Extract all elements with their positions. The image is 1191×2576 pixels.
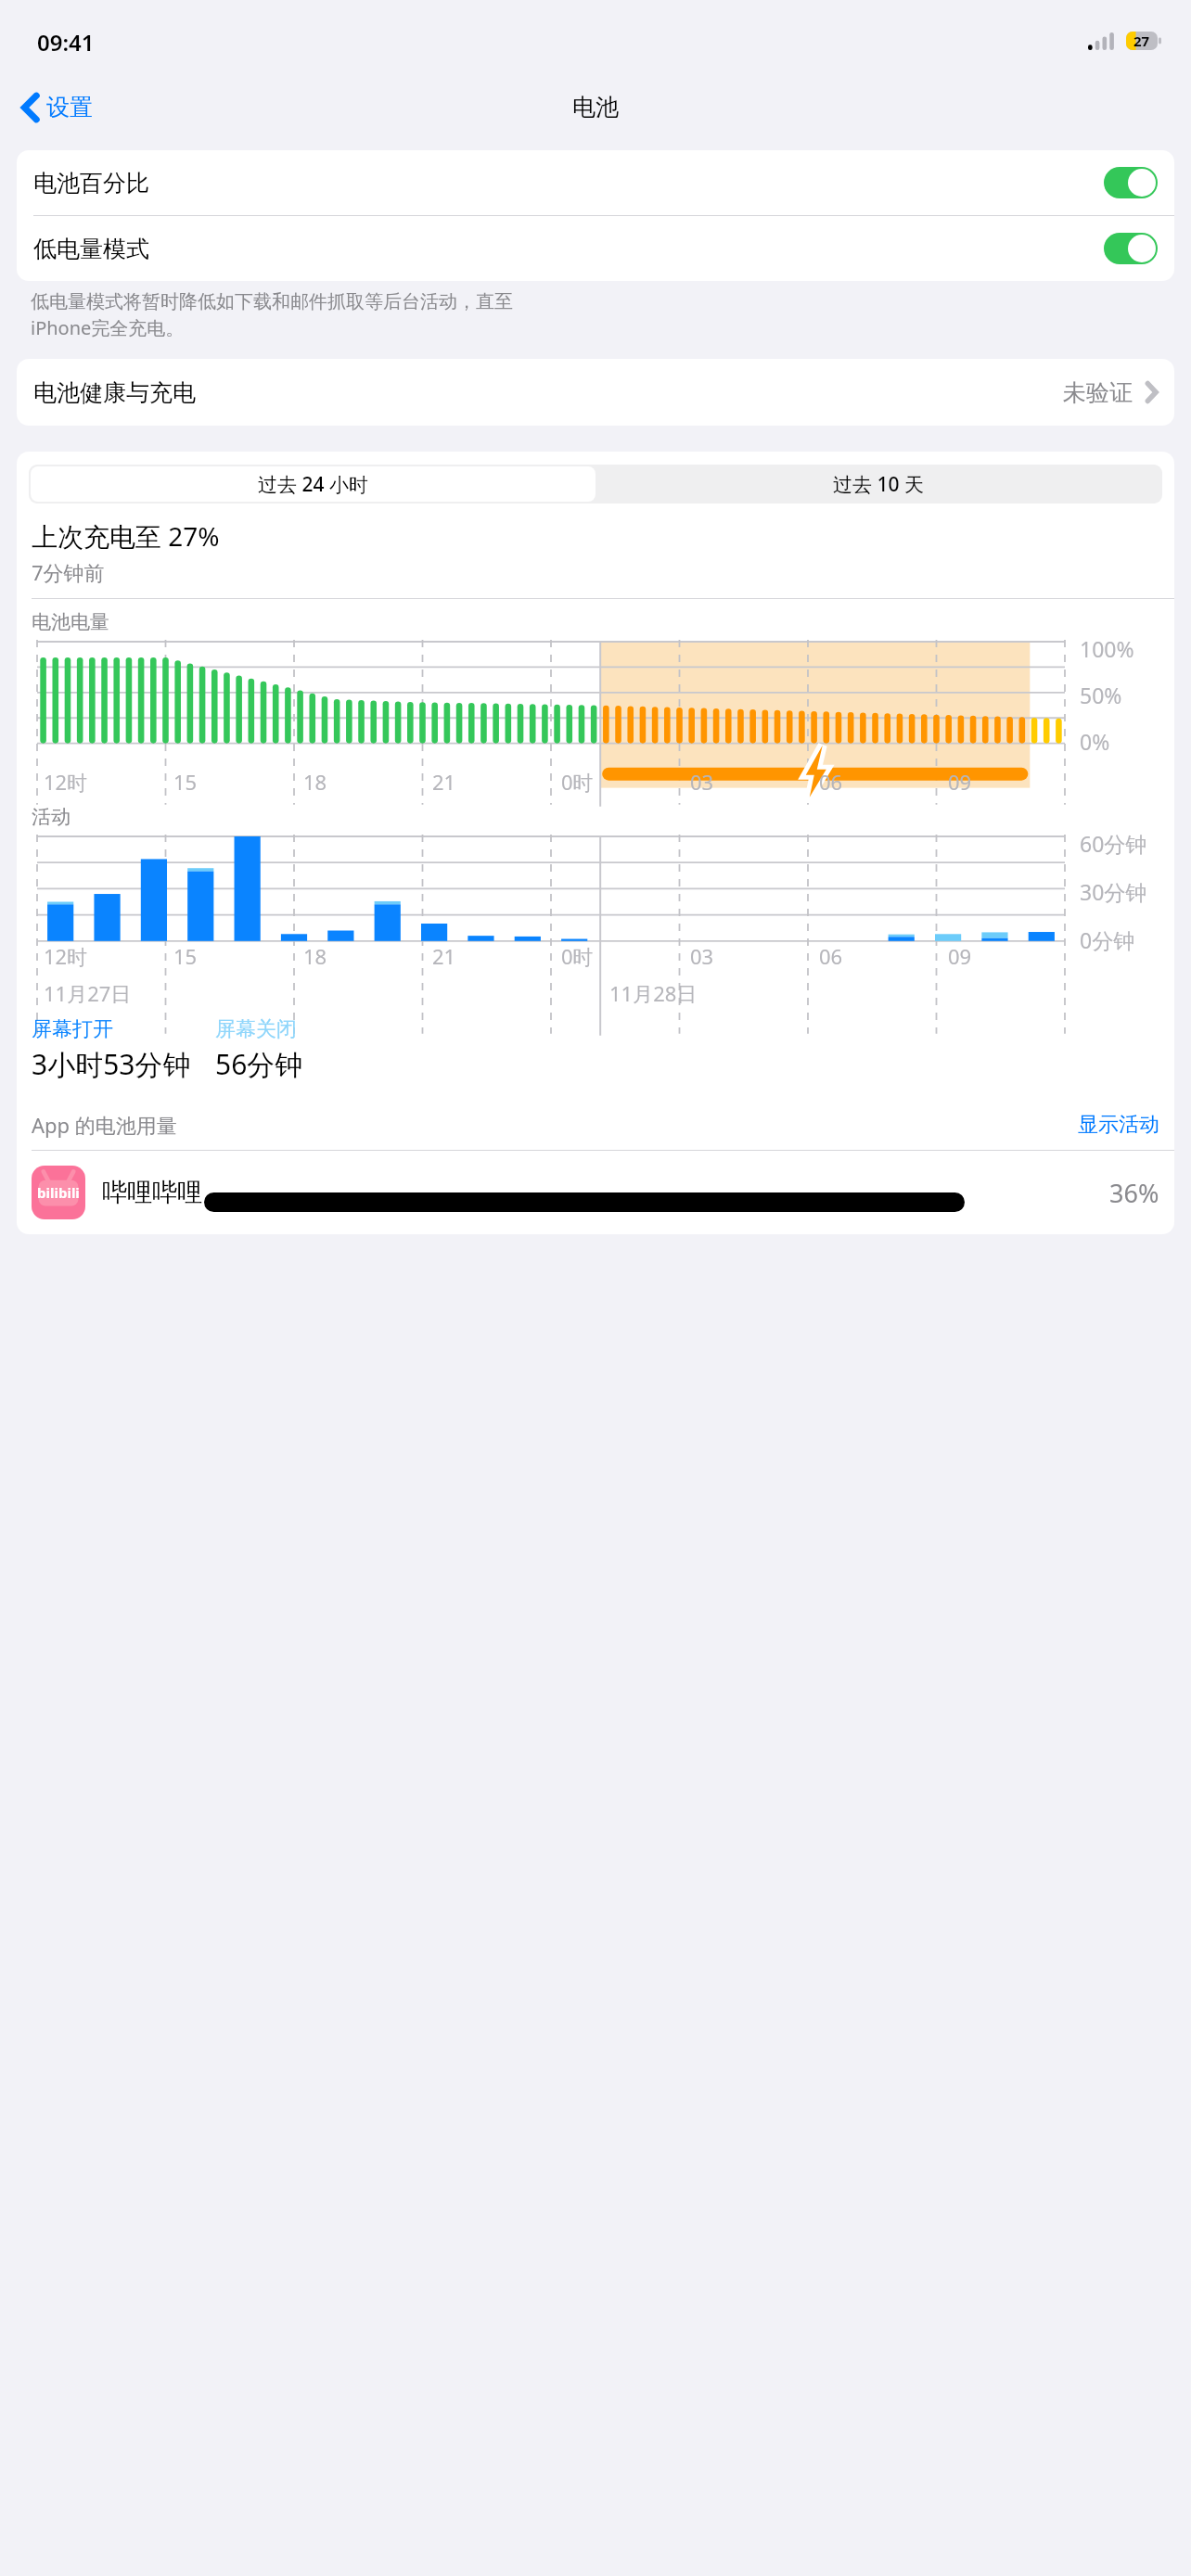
staticText: 09 bbox=[948, 768, 972, 796]
staticText: 30分钟 bbox=[1080, 877, 1147, 906]
staticText: 0时 bbox=[561, 768, 594, 796]
staticText: 15 bbox=[173, 942, 198, 970]
staticText: 03 bbox=[690, 942, 714, 970]
button[interactable]: bilibili bbox=[17, 1151, 1174, 1234]
staticText: App 的电池用量 bbox=[32, 1111, 177, 1139]
staticText: 06 bbox=[819, 942, 843, 970]
staticText: 0% bbox=[1080, 727, 1110, 756]
staticText: 低电量模式 bbox=[33, 235, 149, 263]
staticText: 15 bbox=[173, 768, 198, 796]
staticText: 哔哩哔哩 bbox=[102, 1177, 202, 1208]
staticText: 过去 10 天 bbox=[833, 471, 924, 498]
other: 电池百分比 bbox=[1104, 167, 1158, 198]
staticText: 03 bbox=[690, 768, 714, 796]
staticText: 27 bbox=[1133, 32, 1150, 50]
staticText: 上次充电至 27% bbox=[32, 518, 220, 554]
staticText: 12时 bbox=[44, 768, 88, 796]
staticText: 屏幕打开 bbox=[32, 1016, 113, 1042]
staticText: 100% bbox=[1080, 634, 1134, 663]
other: 低电量模式 bbox=[1104, 233, 1158, 264]
staticText: 09 bbox=[948, 942, 972, 970]
staticText: 36% bbox=[1109, 1176, 1159, 1210]
staticText: 06 bbox=[819, 768, 843, 796]
staticText: 电池百分比 bbox=[33, 169, 149, 198]
staticText: 低电量模式将暂时降低如下载和邮件抓取等后台活动，直至 iPhone完全充电。 bbox=[31, 290, 513, 340]
staticText: 60分钟 bbox=[1080, 829, 1147, 858]
staticText: 50% bbox=[1080, 681, 1122, 709]
staticText: 设置 bbox=[46, 93, 93, 121]
staticText: 活动 bbox=[32, 805, 70, 829]
staticText: 3小时53分钟 bbox=[32, 1045, 191, 1083]
staticText: 18 bbox=[303, 768, 327, 796]
button[interactable]: 过去 10 天 bbox=[595, 466, 1160, 502]
staticText: bilibili bbox=[37, 1183, 80, 1202]
staticText: 未验证 bbox=[1063, 378, 1133, 407]
staticText: 0时 bbox=[561, 942, 594, 970]
staticText: 56分钟 bbox=[215, 1045, 303, 1083]
button[interactable]: 显示活动 bbox=[1078, 1112, 1159, 1138]
staticText: 21 bbox=[432, 768, 456, 796]
staticText: 12时 bbox=[44, 942, 88, 970]
staticText: 0分钟 bbox=[1080, 925, 1135, 954]
staticText: 21 bbox=[432, 942, 456, 970]
staticText: 7分钟前 bbox=[32, 558, 105, 586]
staticText: 过去 24 小时 bbox=[258, 471, 368, 498]
button[interactable]: 低电量模式 bbox=[17, 216, 1174, 281]
button[interactable]: 过去 24 小时 bbox=[31, 466, 595, 502]
staticText: 电池 bbox=[572, 93, 619, 121]
button[interactable]: 设置 bbox=[15, 85, 100, 129]
button[interactable]: 电池健康与充电 bbox=[17, 359, 1174, 426]
staticText: 屏幕关闭 bbox=[215, 1016, 297, 1042]
staticText: 显示活动 bbox=[1078, 1112, 1159, 1138]
button[interactable]: 电池百分比 bbox=[17, 150, 1174, 215]
staticText: 09:41 bbox=[37, 27, 95, 57]
staticText: 电池电量 bbox=[32, 610, 109, 634]
staticText: 电池健康与充电 bbox=[33, 378, 196, 407]
staticText: 11月27日 bbox=[44, 979, 132, 1007]
staticText: 11月28日 bbox=[609, 979, 698, 1007]
staticText: 18 bbox=[303, 942, 327, 970]
